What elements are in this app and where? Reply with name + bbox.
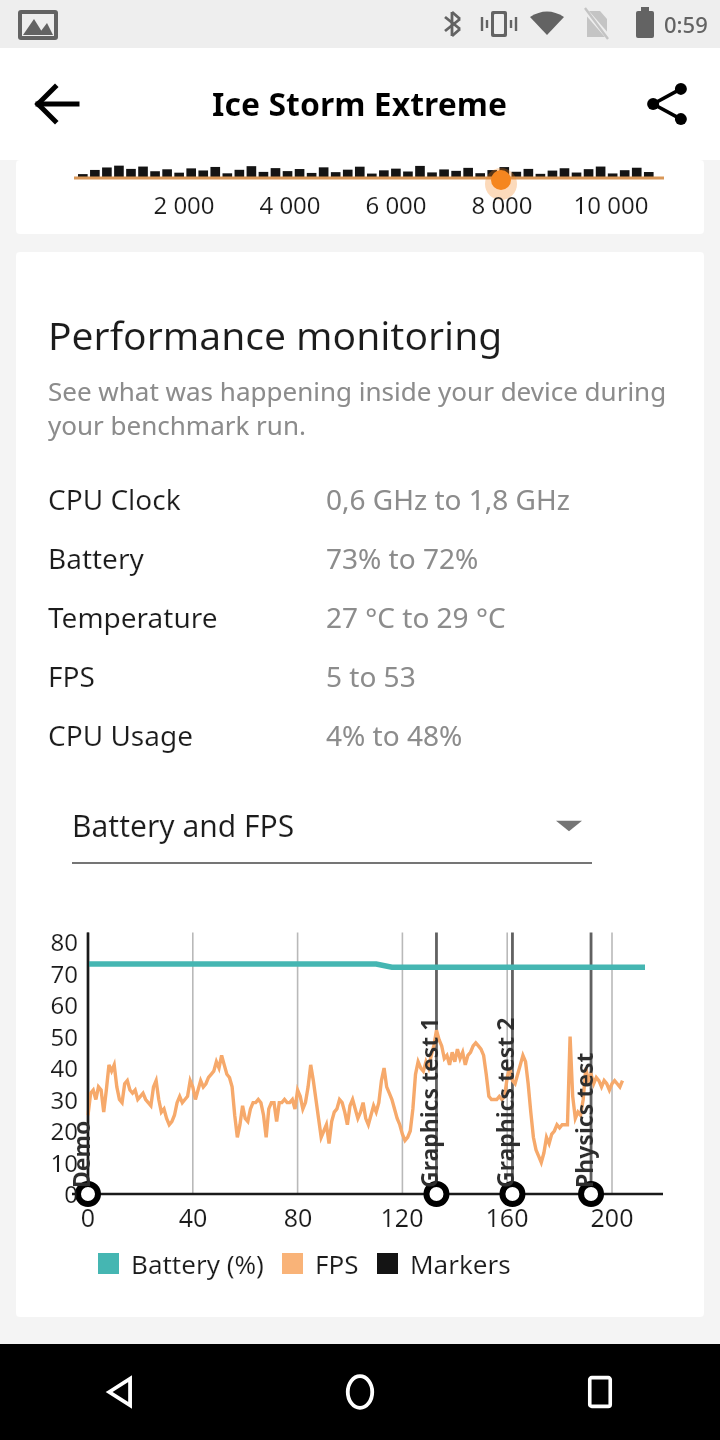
button[interactable]: Battery and FPS (56, 796, 592, 864)
staticText: 120 (367, 1200, 437, 1234)
staticText: Battery (%) (131, 1246, 264, 1281)
staticText: CPU Clock (48, 480, 326, 518)
button[interactable]: Temperature (16, 587, 704, 646)
staticText: 0,6 GHz to 1,8 GHz (326, 480, 570, 518)
staticText: 4 000 (245, 188, 335, 221)
staticText: FPS (315, 1246, 359, 1281)
staticText: 50 (16, 1020, 78, 1053)
button[interactable]: CPU Clock (16, 469, 704, 528)
staticText: 200 (577, 1200, 647, 1234)
staticText: 30 (16, 1083, 78, 1116)
staticText: 40 (16, 1051, 78, 1084)
button[interactable]: FPS (16, 646, 704, 705)
button[interactable]: Share (632, 69, 702, 139)
staticText: 70 (16, 957, 78, 990)
staticText: CPU Usage (48, 716, 326, 754)
staticText: Battery and FPS (72, 805, 556, 846)
button[interactable]: CPU Usage (16, 705, 704, 764)
staticText: Ice Storm Extreme (212, 82, 508, 126)
button[interactable]: Back (0, 1344, 240, 1440)
staticText: 6 000 (351, 188, 441, 221)
staticText: 60 (16, 988, 78, 1021)
staticText: 10 (16, 1146, 78, 1179)
staticText: 20 (16, 1114, 78, 1147)
button[interactable]: Home (240, 1344, 480, 1440)
staticText: 0:59 (664, 9, 708, 39)
staticText: Battery (48, 539, 326, 577)
staticText: 0 (53, 1200, 123, 1234)
staticText: See what was happening inside your devic… (48, 373, 686, 443)
staticText: 4% to 48% (326, 716, 463, 754)
staticText: 80 (263, 1200, 333, 1234)
staticText: 10 000 (566, 188, 656, 221)
button[interactable]: Battery (16, 528, 704, 587)
staticText: 2 000 (139, 188, 229, 221)
button[interactable]: Navigate up (20, 67, 94, 141)
staticText: Temperature (48, 598, 326, 636)
staticText: 40 (158, 1200, 228, 1234)
staticText: 5 to 53 (326, 657, 416, 695)
staticText: 80 (16, 925, 78, 958)
staticText: FPS (48, 657, 326, 695)
staticText: 73% to 72% (326, 539, 479, 577)
button[interactable]: 2 000 (16, 160, 704, 234)
staticText: 8 000 (457, 188, 547, 221)
staticText: Markers (410, 1246, 511, 1281)
button[interactable]: Recent apps (480, 1344, 720, 1440)
staticText: Performance monitoring (48, 308, 503, 361)
staticText: 27 °C to 29 °C (326, 598, 506, 636)
staticText: 160 (472, 1200, 542, 1234)
staticText: 0 (16, 1177, 78, 1210)
